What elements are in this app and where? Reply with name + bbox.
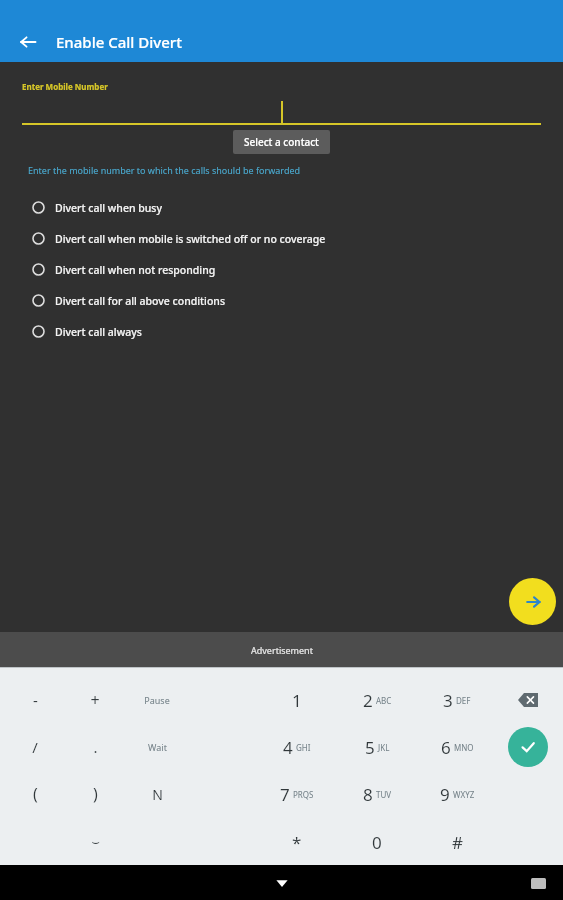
staticText: 7 — [280, 783, 290, 806]
staticText: 6 — [441, 736, 451, 759]
button[interactable]: 3 — [421, 678, 493, 722]
button[interactable]: Confirm — [508, 727, 548, 767]
button[interactable]: 5 — [341, 725, 413, 769]
staticText: 8 — [363, 783, 373, 806]
button[interactable]: 6 — [421, 725, 493, 769]
staticText: Wait — [148, 741, 167, 753]
staticText: Pause — [144, 694, 170, 706]
button[interactable]: N — [133, 772, 181, 816]
staticText: 2 — [363, 689, 373, 712]
staticText: GHI — [296, 742, 311, 753]
button[interactable]: Divert call when busy — [0, 192, 563, 223]
button[interactable]: . — [71, 725, 119, 769]
button[interactable]: Switch keyboard — [525, 870, 551, 896]
button[interactable]: 2 — [341, 678, 413, 722]
button[interactable]: / — [11, 725, 59, 769]
staticText: Divert call always — [55, 325, 142, 339]
staticText: JKL — [378, 742, 390, 753]
button[interactable]: ⌣ — [71, 820, 119, 864]
staticText: / — [32, 737, 38, 757]
staticText: . — [93, 737, 98, 757]
staticText: 4 — [283, 736, 293, 759]
button[interactable]: 8 — [341, 772, 413, 816]
button[interactable]: Wait — [133, 725, 181, 769]
staticText: ( — [33, 783, 38, 805]
staticText: DEF — [456, 695, 471, 706]
staticText: 5 — [365, 736, 375, 759]
staticText: MNO — [454, 742, 474, 753]
button[interactable]: Pause — [133, 678, 181, 722]
button[interactable]: 7 — [261, 772, 333, 816]
staticText: - — [33, 690, 38, 710]
staticText: ) — [93, 783, 98, 805]
staticText: Select a contact — [244, 135, 319, 149]
button[interactable]: Back — [12, 26, 44, 58]
staticText: 3 — [443, 689, 453, 712]
button[interactable]: 9 — [421, 772, 493, 816]
button[interactable]: 4 — [261, 725, 333, 769]
button[interactable]: 0 — [341, 820, 413, 864]
button[interactable]: ( — [11, 772, 59, 816]
button[interactable]: # — [421, 820, 493, 864]
button[interactable]: Divert call always — [0, 316, 563, 347]
staticText: 9 — [440, 783, 450, 806]
staticText: * — [292, 831, 302, 854]
staticText: # — [452, 831, 463, 854]
button[interactable]: - — [11, 678, 59, 722]
button[interactable]: Divert call when not responding — [0, 254, 563, 285]
staticText: 0 — [372, 831, 382, 854]
staticText: + — [90, 689, 100, 711]
staticText: Enter the mobile number to which the cal… — [28, 164, 301, 176]
button[interactable]: Divert call for all above conditions — [0, 285, 563, 316]
staticText: PRQS — [293, 789, 314, 800]
staticText: WXYZ — [453, 789, 475, 800]
staticText: ⌣ — [91, 836, 100, 849]
staticText: Advertisement — [251, 644, 313, 656]
staticText: Enable Call Divert — [56, 32, 182, 52]
button[interactable]: 1 — [261, 678, 333, 722]
button[interactable]: + — [71, 678, 119, 722]
staticText: Divert call for all above conditions — [55, 294, 226, 308]
button[interactable]: Select a contact — [233, 130, 330, 154]
staticText: Divert call when busy — [55, 201, 162, 215]
button[interactable]: Next — [509, 578, 556, 625]
button[interactable]: Backspace — [506, 678, 550, 722]
staticText: 1 — [292, 689, 302, 712]
staticText: TUV — [376, 789, 392, 800]
staticText: Divert call when not responding — [55, 263, 216, 277]
button[interactable]: Advertisement — [0, 632, 563, 667]
staticText: N — [152, 785, 163, 804]
button[interactable]: ) — [71, 772, 119, 816]
button[interactable]: * — [261, 820, 333, 864]
staticText: Enter Mobile Number — [22, 81, 108, 92]
button[interactable]: Divert call when mobile is switched off … — [0, 223, 563, 254]
button[interactable]: Hide keyboard — [265, 866, 299, 900]
staticText: ABC — [376, 695, 392, 706]
staticText: Divert call when mobile is switched off … — [55, 232, 326, 246]
